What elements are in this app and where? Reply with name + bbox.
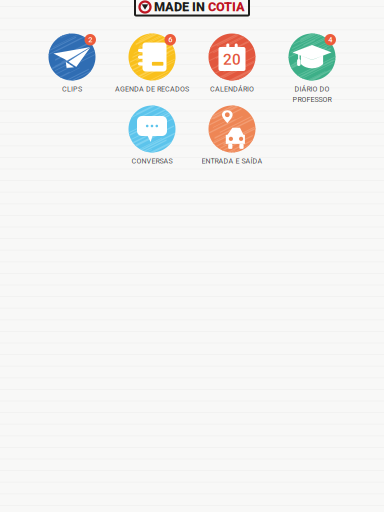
staticText: AGENDA DE RECADOS xyxy=(115,85,189,93)
button[interactable]: 20 xyxy=(192,23,272,95)
button[interactable]: 6 xyxy=(112,23,192,95)
button[interactable]: 4 xyxy=(272,23,352,95)
staticText: DIÁRIO DO xyxy=(294,85,329,93)
button[interactable]: CONVERSAS xyxy=(112,95,192,167)
button[interactable]: ENTRADA E SAÍDA xyxy=(192,95,272,167)
staticText: PROFESSOR xyxy=(292,95,331,104)
staticText: 4 xyxy=(328,35,332,44)
staticText: MADE IN xyxy=(154,0,205,14)
staticText: ENTRADA E SAÍDA xyxy=(201,157,262,165)
staticText: CLIPS xyxy=(62,85,82,93)
staticText: COTIA xyxy=(208,0,245,14)
staticText: 6 xyxy=(168,35,172,44)
staticText: CONVERSAS xyxy=(131,157,172,165)
button[interactable]: 2 xyxy=(32,23,112,95)
staticText: 2 xyxy=(88,35,92,44)
staticText: CALENDÁRIO xyxy=(210,85,254,93)
staticText: 20 xyxy=(223,50,241,68)
